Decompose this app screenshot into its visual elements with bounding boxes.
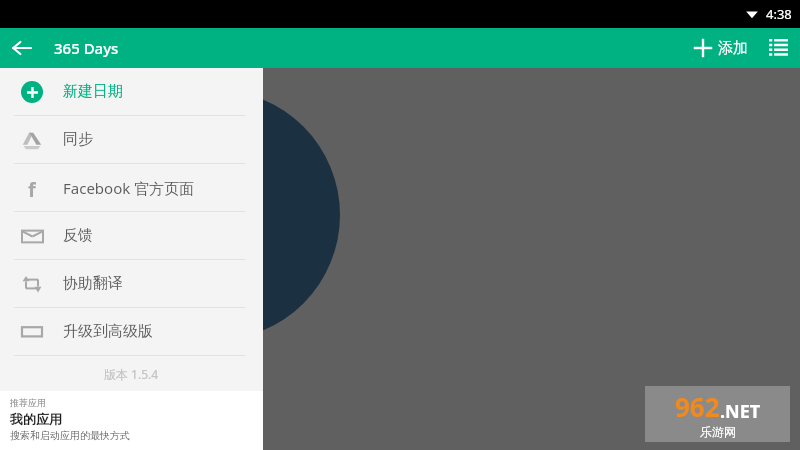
staticText: 365 Days <box>54 38 119 58</box>
button[interactable]: Back <box>0 28 44 68</box>
staticText: 升级到高级版 <box>63 322 153 341</box>
staticText: f <box>28 176 36 200</box>
staticText: 协助翻译 <box>63 274 123 293</box>
button[interactable]: f <box>0 164 263 211</box>
staticText: .NET <box>720 399 761 424</box>
staticText: 962 <box>675 389 720 424</box>
button[interactable]: List view <box>756 28 800 68</box>
button[interactable]: 添加 <box>684 28 756 68</box>
staticText: 我的应用 <box>10 411 62 427</box>
staticText: 同步 <box>63 130 93 149</box>
button[interactable]: 反馈 <box>0 212 263 259</box>
staticText: 搜索和启动应用的最快方式 <box>10 429 130 442</box>
staticText: Facebook 官方页面 <box>63 178 195 198</box>
button[interactable]: 推荐应用 <box>0 391 263 450</box>
staticText: 乐游网 <box>700 424 736 439</box>
staticText: 反馈 <box>63 226 93 245</box>
button[interactable]: 新建日期 <box>0 68 263 115</box>
staticText: 添加 <box>718 39 748 58</box>
staticText: 4:38 <box>766 5 792 23</box>
staticText: 版本 1.5.4 <box>104 366 159 382</box>
staticText: 新建日期 <box>63 82 123 101</box>
button[interactable]: 升级到高级版 <box>0 308 263 355</box>
button[interactable]: 同步 <box>0 116 263 163</box>
staticText: 推荐应用 <box>10 397 46 408</box>
button[interactable]: 协助翻译 <box>0 260 263 307</box>
